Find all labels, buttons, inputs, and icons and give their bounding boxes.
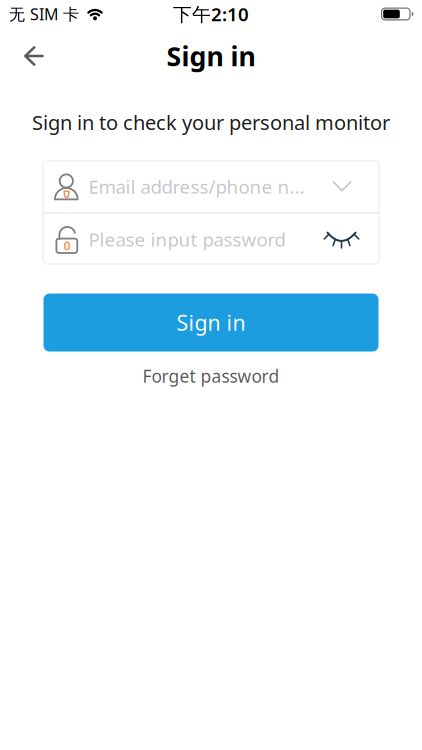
staticText: Email address/phone n... bbox=[88, 174, 304, 199]
button[interactable]: Forget password bbox=[142, 352, 279, 388]
staticText: Sign in bbox=[176, 308, 245, 337]
staticText: Sign in to check your personal monitor bbox=[32, 109, 390, 136]
staticText: 下午2:10 bbox=[173, 2, 249, 26]
button[interactable]: Email address/phone n... bbox=[42, 161, 379, 213]
button[interactable]: Please input password bbox=[42, 214, 379, 265]
button[interactable]: Sign in bbox=[43, 294, 378, 352]
staticText: Sign in bbox=[166, 38, 255, 74]
button[interactable] bbox=[0, 47, 44, 65]
staticText: 无 SIM 卡 bbox=[9, 3, 79, 25]
staticText: Please input password bbox=[88, 227, 285, 252]
staticText: Forget password bbox=[142, 365, 279, 388]
